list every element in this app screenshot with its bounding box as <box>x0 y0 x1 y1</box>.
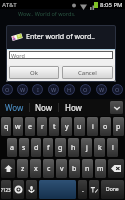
staticText: I <box>37 86 39 93</box>
staticText: Enter world of word.. <box>26 32 95 42</box>
button[interactable]: O <box>112 84 123 95</box>
staticText: n <box>85 164 90 174</box>
button[interactable]: p <box>113 117 124 136</box>
staticText: z <box>21 164 25 174</box>
button[interactable]: b <box>69 159 80 178</box>
staticText: Done <box>106 186 119 193</box>
button[interactable]: W <box>48 84 59 95</box>
button[interactable]: k <box>94 138 105 157</box>
button[interactable]: q <box>1 117 11 136</box>
button[interactable]: e <box>25 117 35 136</box>
staticText: c <box>47 164 51 174</box>
button[interactable]: l <box>107 138 118 157</box>
button[interactable]: t <box>49 117 59 136</box>
staticText: Cancel <box>78 69 97 77</box>
button[interactable]: W <box>17 84 28 95</box>
staticText: y <box>65 122 69 132</box>
button[interactable]: ?123 <box>1 180 11 199</box>
staticText: Now <box>35 102 53 113</box>
button[interactable]: W <box>96 84 107 95</box>
button[interactable]: Word <box>9 51 113 59</box>
button[interactable]: I <box>32 84 43 95</box>
button[interactable]: u <box>74 117 85 136</box>
staticText: v <box>60 164 64 174</box>
button[interactable]: r <box>37 117 47 136</box>
staticText: u <box>77 122 82 132</box>
button[interactable]: m <box>95 159 106 178</box>
staticText: W <box>20 86 26 93</box>
staticText: g <box>58 143 63 153</box>
button[interactable]: d <box>31 138 41 157</box>
button[interactable]: Ok <box>9 66 59 79</box>
staticText: x <box>34 164 38 174</box>
button[interactable]: h <box>68 138 79 157</box>
staticText: O <box>5 86 10 93</box>
staticText: O <box>115 86 120 93</box>
button[interactable]: a <box>7 138 17 157</box>
button[interactable]: w <box>13 117 23 136</box>
button[interactable]: Space <box>39 180 76 199</box>
button[interactable]: i <box>87 117 98 136</box>
button[interactable]: O <box>80 84 91 95</box>
staticText: p <box>116 122 121 132</box>
button[interactable]: n <box>82 159 93 178</box>
button[interactable]: s <box>19 138 29 157</box>
staticText: . <box>82 185 84 195</box>
staticText: k <box>98 143 102 153</box>
button[interactable]: j <box>81 138 92 157</box>
staticText: b <box>72 164 77 174</box>
button[interactable]: Settings <box>13 180 24 199</box>
staticText: ?123 <box>1 187 11 193</box>
staticText: w <box>15 122 21 132</box>
button[interactable]: Voice input <box>26 180 37 199</box>
staticText: h <box>71 143 76 153</box>
staticText: a <box>10 143 14 153</box>
button[interactable]: Now <box>30 99 58 116</box>
staticText: W <box>51 86 57 93</box>
button[interactable]: v <box>56 159 67 178</box>
button[interactable]: Done <box>101 180 124 199</box>
button[interactable]: Backspace <box>108 159 124 178</box>
staticText: O <box>83 86 88 93</box>
button[interactable]: g <box>55 138 66 157</box>
button[interactable]: o <box>100 117 111 136</box>
staticText: f <box>47 143 50 153</box>
staticText: Ok <box>30 69 38 77</box>
button[interactable]: f <box>43 138 53 157</box>
button[interactable]: Cancel <box>62 66 113 79</box>
staticText: l <box>112 143 114 153</box>
staticText: d <box>34 143 39 153</box>
button[interactable]: Handwriting <box>89 180 99 199</box>
button[interactable]: c <box>43 159 54 178</box>
staticText: q <box>4 122 9 132</box>
staticText: H <box>67 86 72 93</box>
button[interactable]: More suggestions <box>110 101 123 114</box>
staticText: i <box>92 122 94 132</box>
staticText: r <box>41 122 44 132</box>
staticText: AT&T <box>2 1 17 9</box>
staticText: How <box>65 102 82 113</box>
button[interactable]: O <box>2 84 13 95</box>
staticText: o <box>103 122 108 132</box>
staticText: j <box>86 143 88 153</box>
button[interactable]: H <box>64 84 75 95</box>
staticText: W <box>99 86 105 93</box>
staticText: Wow.. World of words. <box>18 10 76 17</box>
button[interactable]: How <box>59 99 87 116</box>
button[interactable]: y <box>61 117 72 136</box>
staticText: Wow <box>5 102 24 113</box>
staticText: t <box>53 122 56 132</box>
staticText: s <box>22 143 26 153</box>
staticText: e <box>28 122 32 132</box>
staticText: Word <box>11 52 25 59</box>
button[interactable]: . <box>78 180 87 199</box>
button[interactable]: z <box>17 159 28 178</box>
button[interactable]: x <box>30 159 41 178</box>
staticText: m <box>97 164 104 174</box>
button[interactable]: Shift <box>1 159 15 178</box>
staticText: 8:05 PM <box>100 1 123 9</box>
button[interactable]: Wow <box>0 99 29 116</box>
